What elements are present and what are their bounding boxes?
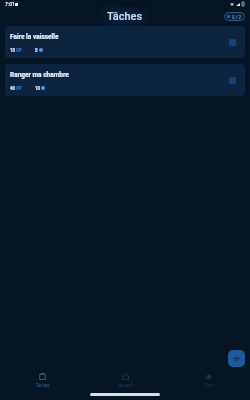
button[interactable]: Ranger ma chambre [5,64,245,96]
staticText: 0 / 2 [232,14,242,20]
button[interactable]: Marquer comme terminé [229,39,236,46]
staticText: 10 [10,47,15,53]
staticText: Flux [204,382,213,388]
staticText: Accueil [118,382,133,388]
staticText: XP [16,85,22,91]
staticText: Tâches [35,382,50,388]
button[interactable]: Ajouter une tâche [228,350,245,367]
button[interactable]: Accueil [84,373,167,388]
staticText: 5 [35,47,38,53]
staticText: Ranger ma chambre [10,71,69,79]
staticText: Tâches [107,10,143,23]
button[interactable]: Tâches [0,373,84,388]
staticText: 40 [10,85,15,91]
button[interactable]: Faire la vaisselle [5,26,245,58]
button[interactable]: 0 / 2 [224,12,245,21]
staticText: Faire la vaisselle [10,33,59,41]
button[interactable]: Flux [167,373,250,388]
staticText: XP [16,47,22,53]
staticText: 7:01 [5,1,15,7]
button[interactable]: Marquer comme terminé [229,77,236,84]
staticText: 10 [35,85,40,91]
